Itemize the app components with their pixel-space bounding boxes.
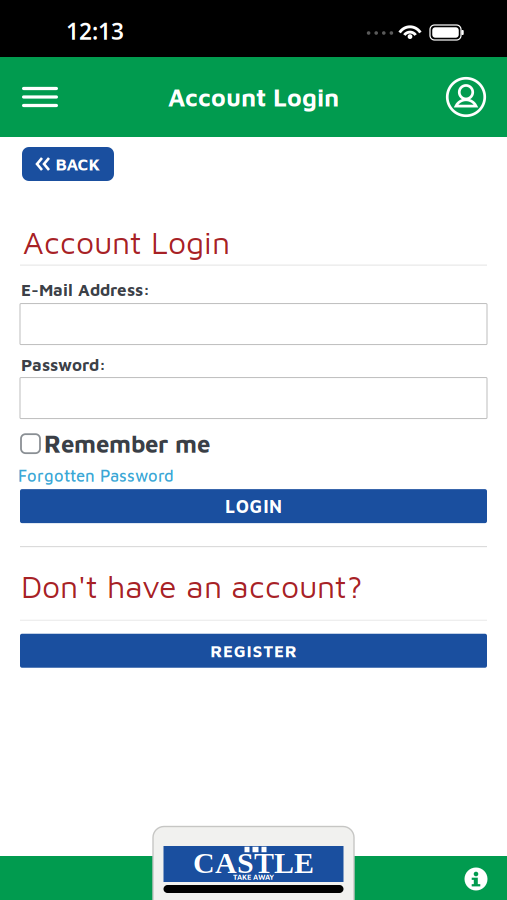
button[interactable]: Castle Take Away: [153, 826, 354, 900]
staticText: LOGIN: [225, 496, 282, 517]
staticText: Account Login: [23, 223, 230, 261]
button[interactable]: Menu: [22, 87, 58, 107]
staticText: Account Login: [168, 82, 339, 112]
button[interactable]: LOGIN: [20, 489, 487, 523]
staticText: Don't have an account?: [21, 567, 363, 605]
button[interactable]: Forgotten Password: [18, 466, 174, 485]
staticText: Password:: [21, 355, 106, 375]
button[interactable]: REGISTER: [20, 634, 487, 668]
staticText: E-Mail Address:: [21, 280, 150, 300]
staticText: CASTLE: [193, 846, 314, 880]
staticText: TAKE AWAY: [233, 873, 274, 881]
button[interactable]: Remember me: [21, 430, 210, 458]
button[interactable]: Info: [464, 867, 487, 890]
staticText: 12:13: [66, 16, 124, 46]
staticText: Remember me: [44, 430, 210, 458]
button[interactable]: Back: [22, 147, 114, 181]
staticText: BACK: [55, 154, 100, 174]
staticText: REGISTER: [210, 641, 297, 661]
button[interactable]: Account: [446, 77, 486, 117]
staticText: Forgotten Password: [18, 466, 174, 485]
